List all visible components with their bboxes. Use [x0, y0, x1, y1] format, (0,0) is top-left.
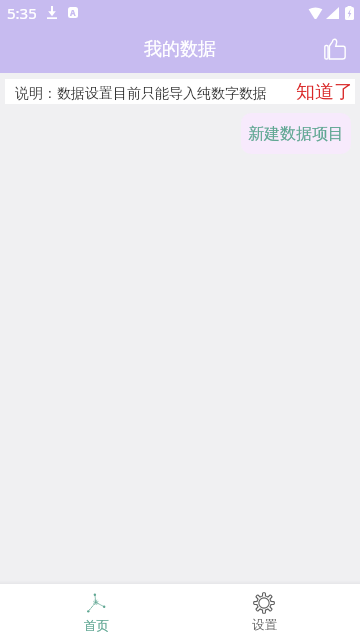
staticText: 新建数据项目: [248, 124, 344, 144]
staticText: 知道了: [296, 80, 353, 104]
button[interactable]: Like: [320, 34, 350, 64]
button[interactable]: 设置: [180, 584, 348, 639]
button[interactable]: 新建数据项目: [241, 113, 351, 154]
button[interactable]: 知道了: [286, 79, 355, 104]
staticText: 设置: [252, 617, 277, 633]
staticText: 首页: [84, 618, 109, 634]
button[interactable]: 首页: [12, 584, 180, 639]
staticText: 5:35: [7, 3, 37, 23]
staticText: 说明：数据设置目前只能导入纯数字数据: [15, 85, 267, 103]
staticText: 我的数据: [144, 38, 216, 61]
staticText: A: [70, 7, 76, 18]
